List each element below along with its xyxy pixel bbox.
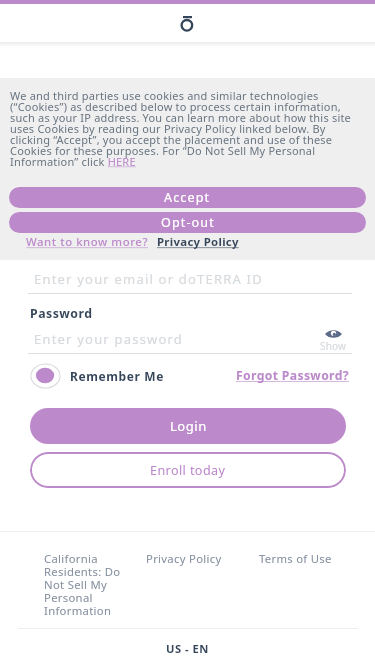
- staticText: Forgot Password?: [236, 367, 349, 384]
- staticText: Accept: [164, 189, 211, 206]
- staticText: Remember Me: [70, 368, 164, 384]
- button[interactable]: US - EN: [166, 641, 209, 656]
- staticText: US - EN: [166, 641, 209, 656]
- staticText: Want to know more?: [26, 234, 149, 250]
- button[interactable]: Login: [30, 408, 346, 444]
- button[interactable]: Want to know more?: [26, 234, 149, 250]
- staticText: Opt-out: [161, 214, 215, 231]
- button[interactable]: Privacy Policy: [146, 551, 222, 566]
- staticText: Enroll today: [150, 462, 226, 479]
- button[interactable]: Privacy Policy: [157, 234, 239, 250]
- button[interactable]: Enroll today: [30, 452, 346, 488]
- staticText: Enter your password: [34, 330, 184, 348]
- button[interactable]: Show password: [320, 330, 347, 353]
- button[interactable]: Opt-out: [9, 212, 366, 233]
- staticText: Privacy Policy: [157, 234, 239, 250]
- staticText: Login: [170, 417, 207, 435]
- button[interactable]: Forgot Password?: [236, 367, 349, 384]
- button[interactable]: Terms of Use: [259, 551, 332, 566]
- staticText: Show: [320, 339, 347, 353]
- staticText: We and third parties use cookies and sim…: [10, 88, 361, 169]
- staticText: California Residents: Do Not Sell My Per…: [44, 551, 138, 618]
- staticText: Password: [30, 305, 93, 322]
- button[interactable]: Remember Me: [30, 363, 164, 389]
- button[interactable]: California Residents: Do Not Sell My Per…: [44, 551, 138, 618]
- button[interactable]: Accept: [9, 187, 366, 208]
- staticText: Privacy Policy: [146, 551, 222, 566]
- staticText: Enter your email or doTERRA ID: [34, 270, 263, 288]
- staticText: Terms of Use: [259, 551, 332, 566]
